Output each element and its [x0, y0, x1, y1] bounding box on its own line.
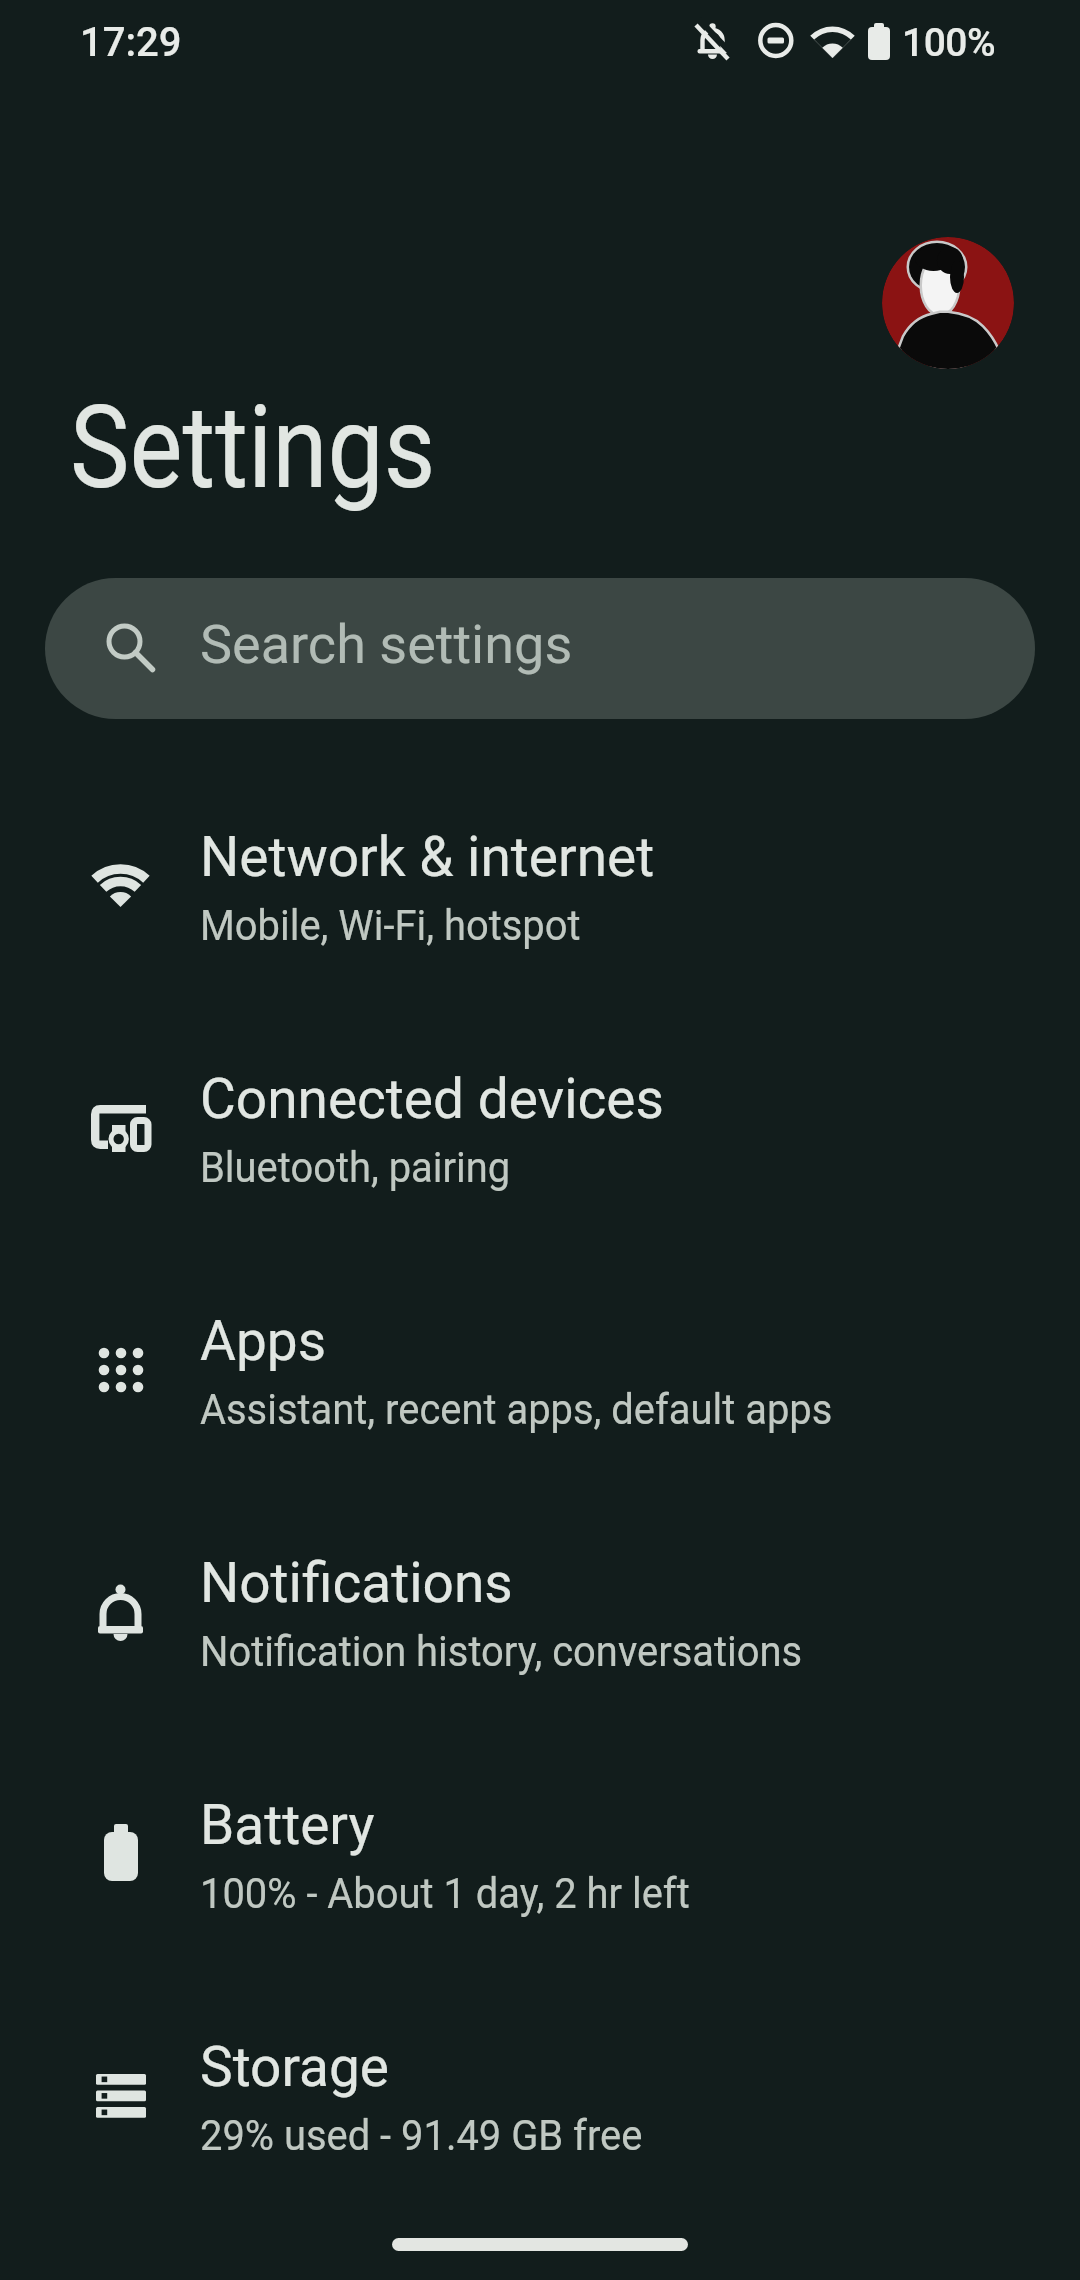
staticText: Assistant, recent apps, default apps [200, 1385, 833, 1434]
staticText: Settings [70, 380, 435, 515]
staticText: Network & internet [200, 825, 655, 889]
staticText: Storage [200, 2035, 390, 2099]
button[interactable]: Battery [0, 1733, 1080, 1975]
staticText: Mobile, Wi-Fi, hotspot [200, 901, 581, 950]
button[interactable]: Search settings [45, 578, 1035, 719]
staticText: Notification history, conversations [200, 1627, 802, 1676]
button[interactable]: Storage [0, 1975, 1080, 2217]
button[interactable]: Notifications [0, 1491, 1080, 1733]
button[interactable]: Apps [0, 1249, 1080, 1491]
staticText: 17:29 [80, 19, 182, 66]
button[interactable] [882, 237, 1014, 369]
staticText: 100% - About 1 day, 2 hr left [200, 1869, 690, 1918]
staticText: Bluetooth, pairing [200, 1143, 511, 1192]
staticText: Notifications [200, 1551, 513, 1615]
staticText: Connected devices [200, 1067, 664, 1131]
button[interactable]: Connected devices [0, 1007, 1080, 1249]
staticText: Search settings [200, 613, 573, 676]
staticText: Battery [200, 1793, 375, 1857]
staticText: 29% used - 91.49 GB free [200, 2111, 643, 2160]
staticText: 100% [902, 20, 996, 66]
staticText: Apps [200, 1309, 327, 1373]
button[interactable]: Network & internet [0, 765, 1080, 1007]
